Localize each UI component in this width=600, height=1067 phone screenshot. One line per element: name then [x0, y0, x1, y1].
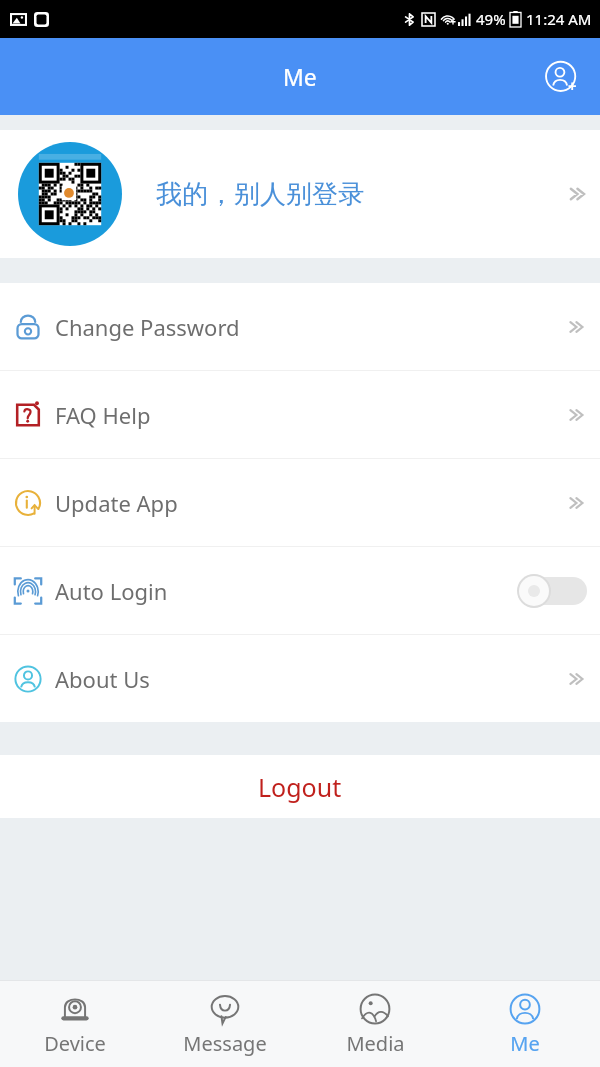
staticText: Media	[346, 1030, 405, 1057]
staticText: Me	[510, 1030, 540, 1057]
button[interactable]: FAQ Help	[0, 371, 600, 458]
staticText: Me	[283, 61, 317, 92]
staticText: 49%	[476, 9, 506, 29]
button[interactable]: Logout	[0, 755, 600, 818]
staticText: 我的，别人别登录	[156, 178, 364, 211]
staticText: FAQ Help	[55, 400, 151, 430]
staticText: Device	[44, 1030, 106, 1057]
staticText: Auto Login	[55, 576, 168, 606]
staticText: Logout	[258, 770, 342, 804]
button[interactable]: Message	[150, 980, 300, 1067]
staticText: Update App	[55, 488, 178, 518]
staticText: Message	[183, 1030, 267, 1057]
button[interactable]: 我的，别人别登录	[0, 130, 600, 258]
button[interactable]: Media	[300, 980, 450, 1067]
staticText: About Us	[55, 664, 150, 694]
button[interactable]: Me	[450, 980, 600, 1067]
button[interactable]: About Us	[0, 635, 600, 722]
button[interactable]: Auto Login	[0, 547, 600, 634]
staticText: Change Password	[55, 312, 240, 342]
button[interactable]: Device	[0, 980, 150, 1067]
button[interactable]: Change Password	[0, 283, 600, 370]
staticText: 11:24 AM	[526, 9, 592, 29]
button[interactable]: Auto Login toggle	[517, 573, 587, 609]
button[interactable]: Add account	[538, 53, 586, 101]
button[interactable]: Update App	[0, 459, 600, 546]
